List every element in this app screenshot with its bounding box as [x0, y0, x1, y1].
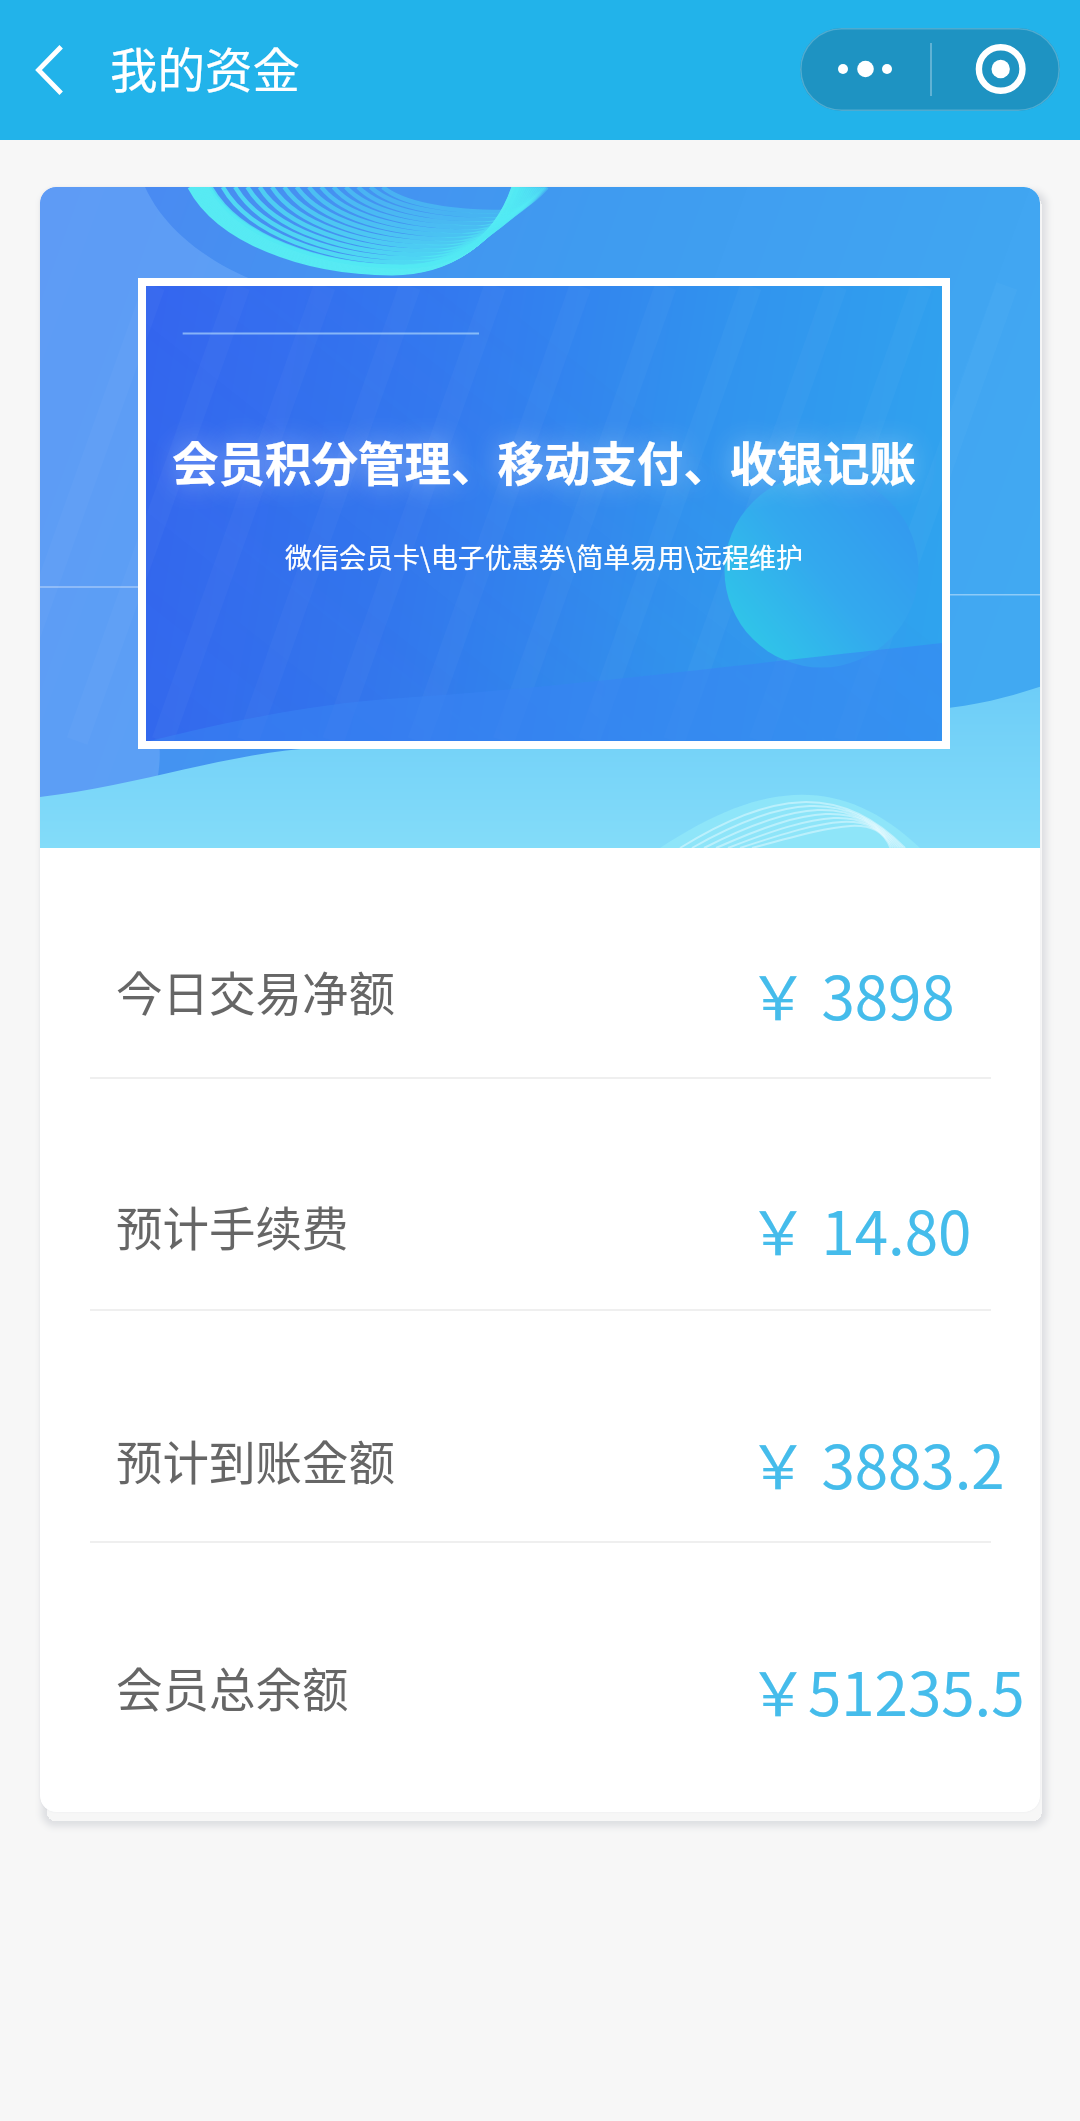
staticText: 会员总余额: [116, 1653, 349, 1720]
staticText: ￥ 3898: [748, 950, 955, 1037]
staticText: ￥ 14.80: [748, 1185, 972, 1272]
staticText: 我的资金: [110, 33, 300, 102]
staticText: 今日交易净额: [116, 957, 395, 1024]
button[interactable]: 今日交易净额: [40, 935, 1040, 1051]
staticText: 预计到账金额: [116, 1426, 395, 1493]
staticText: 会员积分管理、移动支付、收银记账: [172, 427, 916, 494]
button[interactable]: 预计到账金额: [40, 1404, 1040, 1520]
button[interactable]: 预计手续费: [40, 1170, 1040, 1286]
staticText: 预计手续费: [116, 1192, 349, 1259]
staticText: ￥51235.5: [748, 1646, 1025, 1733]
button[interactable]: 会员总余额: [40, 1631, 1040, 1747]
staticText: ￥ 3883.2: [748, 1419, 1005, 1506]
button[interactable]: Back: [8, 30, 88, 110]
staticText: 微信会员卡\电子优惠券\简单易用\远程维护: [285, 537, 803, 576]
button[interactable]: More options: [800, 28, 1060, 111]
